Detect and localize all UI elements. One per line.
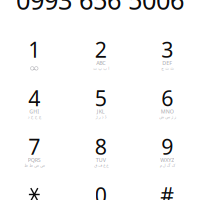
- button[interactable]: 3: [135, 33, 199, 79]
- staticText: 7: [28, 132, 40, 161]
- button[interactable]: 4: [2, 81, 66, 127]
- staticText: 4: [28, 84, 40, 112]
- button[interactable]: 6: [135, 81, 199, 127]
- button[interactable]: 5: [69, 81, 133, 127]
- staticText: ک گ ل م: [159, 163, 175, 168]
- button[interactable]: 9: [135, 130, 199, 176]
- staticText: JKL: [97, 108, 105, 115]
- staticText: 3: [161, 35, 173, 64]
- staticText: MNO: [161, 108, 174, 115]
- staticText: 0993 656 5006: [16, 0, 184, 17]
- staticText: ص ض ط ظ: [24, 163, 45, 168]
- staticText: 6: [161, 84, 173, 112]
- staticText: ز ژ س ش: [159, 115, 176, 119]
- staticText: DEF: [162, 59, 172, 67]
- staticText: چ ح خ د: [27, 115, 41, 119]
- staticText: PQRS: [28, 156, 41, 164]
- staticText: GHI: [29, 108, 39, 115]
- staticText: 0: [95, 181, 107, 200]
- button[interactable]: 8: [69, 130, 133, 176]
- staticText: ع غ ف ق: [94, 163, 108, 168]
- staticText: WXYZ: [160, 156, 174, 164]
- staticText: #: [160, 181, 174, 200]
- button[interactable]: Star: [2, 178, 66, 200]
- button[interactable]: #: [135, 178, 199, 200]
- button[interactable]: 2: [69, 33, 133, 79]
- staticText: TUV: [96, 156, 106, 164]
- button[interactable]: 0: [69, 178, 133, 200]
- staticText: ٹ ث ج: [161, 66, 174, 71]
- staticText: 2: [95, 35, 107, 64]
- staticText: ABC: [96, 59, 105, 67]
- staticText: 8: [95, 132, 107, 161]
- button[interactable]: 7: [2, 130, 66, 176]
- staticText: 1: [28, 35, 40, 64]
- button[interactable]: 1: [2, 33, 66, 79]
- staticText: ا ب پ ت: [93, 66, 109, 71]
- staticText: 9: [161, 132, 173, 161]
- staticText: ڈ ذ ر ڑ: [95, 115, 106, 119]
- staticText: 5: [95, 84, 107, 112]
